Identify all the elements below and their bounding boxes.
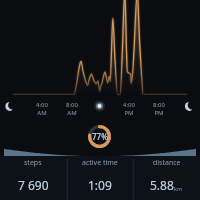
- staticText: 8:00: [66, 101, 78, 109]
- staticText: active time: [82, 158, 118, 168]
- button[interactable]: active time: [66, 158, 133, 200]
- staticText: AM: [37, 109, 47, 117]
- staticText: 7 690: [18, 177, 49, 193]
- button[interactable]: distance: [133, 158, 200, 200]
- staticText: 1:09: [88, 177, 112, 193]
- staticText: km: [174, 185, 183, 192]
- staticText: distance: [153, 158, 181, 168]
- staticText: 4:00: [36, 101, 48, 109]
- staticText: steps: [24, 158, 42, 168]
- staticText: 8:00: [153, 101, 165, 109]
- staticText: 77%: [92, 131, 108, 142]
- staticText: PM: [154, 109, 164, 117]
- button[interactable]: Daily goal 77 percent: [88, 125, 111, 148]
- staticText: 5.88: [150, 177, 174, 193]
- staticText: AM: [67, 109, 77, 117]
- button[interactable]: steps: [0, 158, 66, 200]
- staticText: 4:00: [123, 101, 135, 109]
- staticText: PM: [124, 109, 134, 117]
